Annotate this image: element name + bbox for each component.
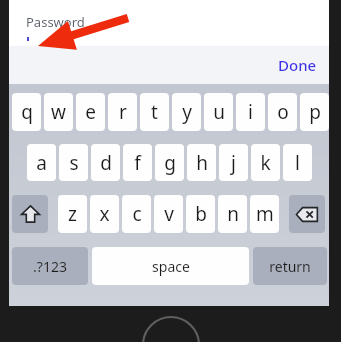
- button[interactable]: t: [140, 93, 169, 131]
- staticText: n: [227, 201, 239, 227]
- button[interactable]: e: [76, 93, 105, 131]
- button[interactable]: v: [154, 195, 183, 233]
- button[interactable]: space: [92, 247, 249, 285]
- button[interactable]: f: [123, 144, 152, 181]
- button[interactable]: o: [268, 93, 297, 131]
- staticText: m: [256, 201, 274, 227]
- staticText: return: [269, 257, 311, 276]
- staticText: c: [132, 201, 142, 227]
- button[interactable]: c: [122, 195, 151, 233]
- button[interactable]: Shift: [12, 195, 48, 233]
- staticText: f: [134, 150, 141, 176]
- button[interactable]: Backspace: [289, 195, 325, 233]
- button[interactable]: y: [172, 93, 201, 131]
- button[interactable]: g: [155, 144, 184, 181]
- button[interactable]: r: [108, 93, 137, 131]
- staticText: d: [100, 150, 112, 176]
- staticText: x: [99, 201, 110, 227]
- button[interactable]: q: [12, 93, 41, 131]
- staticText: r: [119, 99, 127, 125]
- button[interactable]: b: [186, 195, 215, 233]
- staticText: u: [213, 99, 225, 125]
- staticText: y: [182, 99, 192, 125]
- button[interactable]: m: [250, 195, 279, 233]
- staticText: h: [196, 150, 208, 176]
- staticText: g: [164, 150, 176, 176]
- staticText: w: [51, 99, 66, 125]
- button[interactable]: k: [251, 144, 280, 181]
- staticText: i: [248, 99, 253, 125]
- button[interactable]: s: [59, 144, 88, 181]
- button[interactable]: a: [27, 144, 56, 181]
- button[interactable]: z: [58, 195, 87, 233]
- button[interactable]: w: [44, 93, 73, 131]
- staticText: e: [85, 99, 96, 125]
- button[interactable]: i: [236, 93, 265, 131]
- staticText: v: [164, 201, 174, 227]
- staticText: a: [36, 150, 47, 176]
- button[interactable]: h: [187, 144, 216, 181]
- button[interactable]: l: [283, 144, 312, 181]
- staticText: p: [309, 99, 321, 125]
- staticText: q: [21, 99, 33, 125]
- button[interactable]: u: [204, 93, 233, 131]
- staticText: l: [295, 150, 300, 176]
- button[interactable]: j: [219, 144, 248, 181]
- staticText: Password: [26, 13, 85, 31]
- button[interactable]: n: [218, 195, 247, 233]
- staticText: z: [68, 201, 77, 227]
- staticText: o: [277, 99, 289, 125]
- staticText: b: [195, 201, 207, 227]
- button[interactable]: p: [300, 93, 329, 131]
- staticText: j: [231, 150, 236, 176]
- button[interactable]: .?123: [12, 247, 88, 285]
- staticText: k: [260, 150, 271, 176]
- button[interactable]: Done: [272, 51, 323, 79]
- staticText: t: [151, 99, 158, 125]
- staticText: s: [69, 150, 79, 176]
- button[interactable]: d: [91, 144, 120, 181]
- staticText: Done: [278, 55, 317, 75]
- button[interactable]: x: [90, 195, 119, 233]
- button[interactable]: return: [253, 247, 327, 285]
- staticText: space: [152, 257, 190, 276]
- staticText: .?123: [33, 257, 67, 276]
